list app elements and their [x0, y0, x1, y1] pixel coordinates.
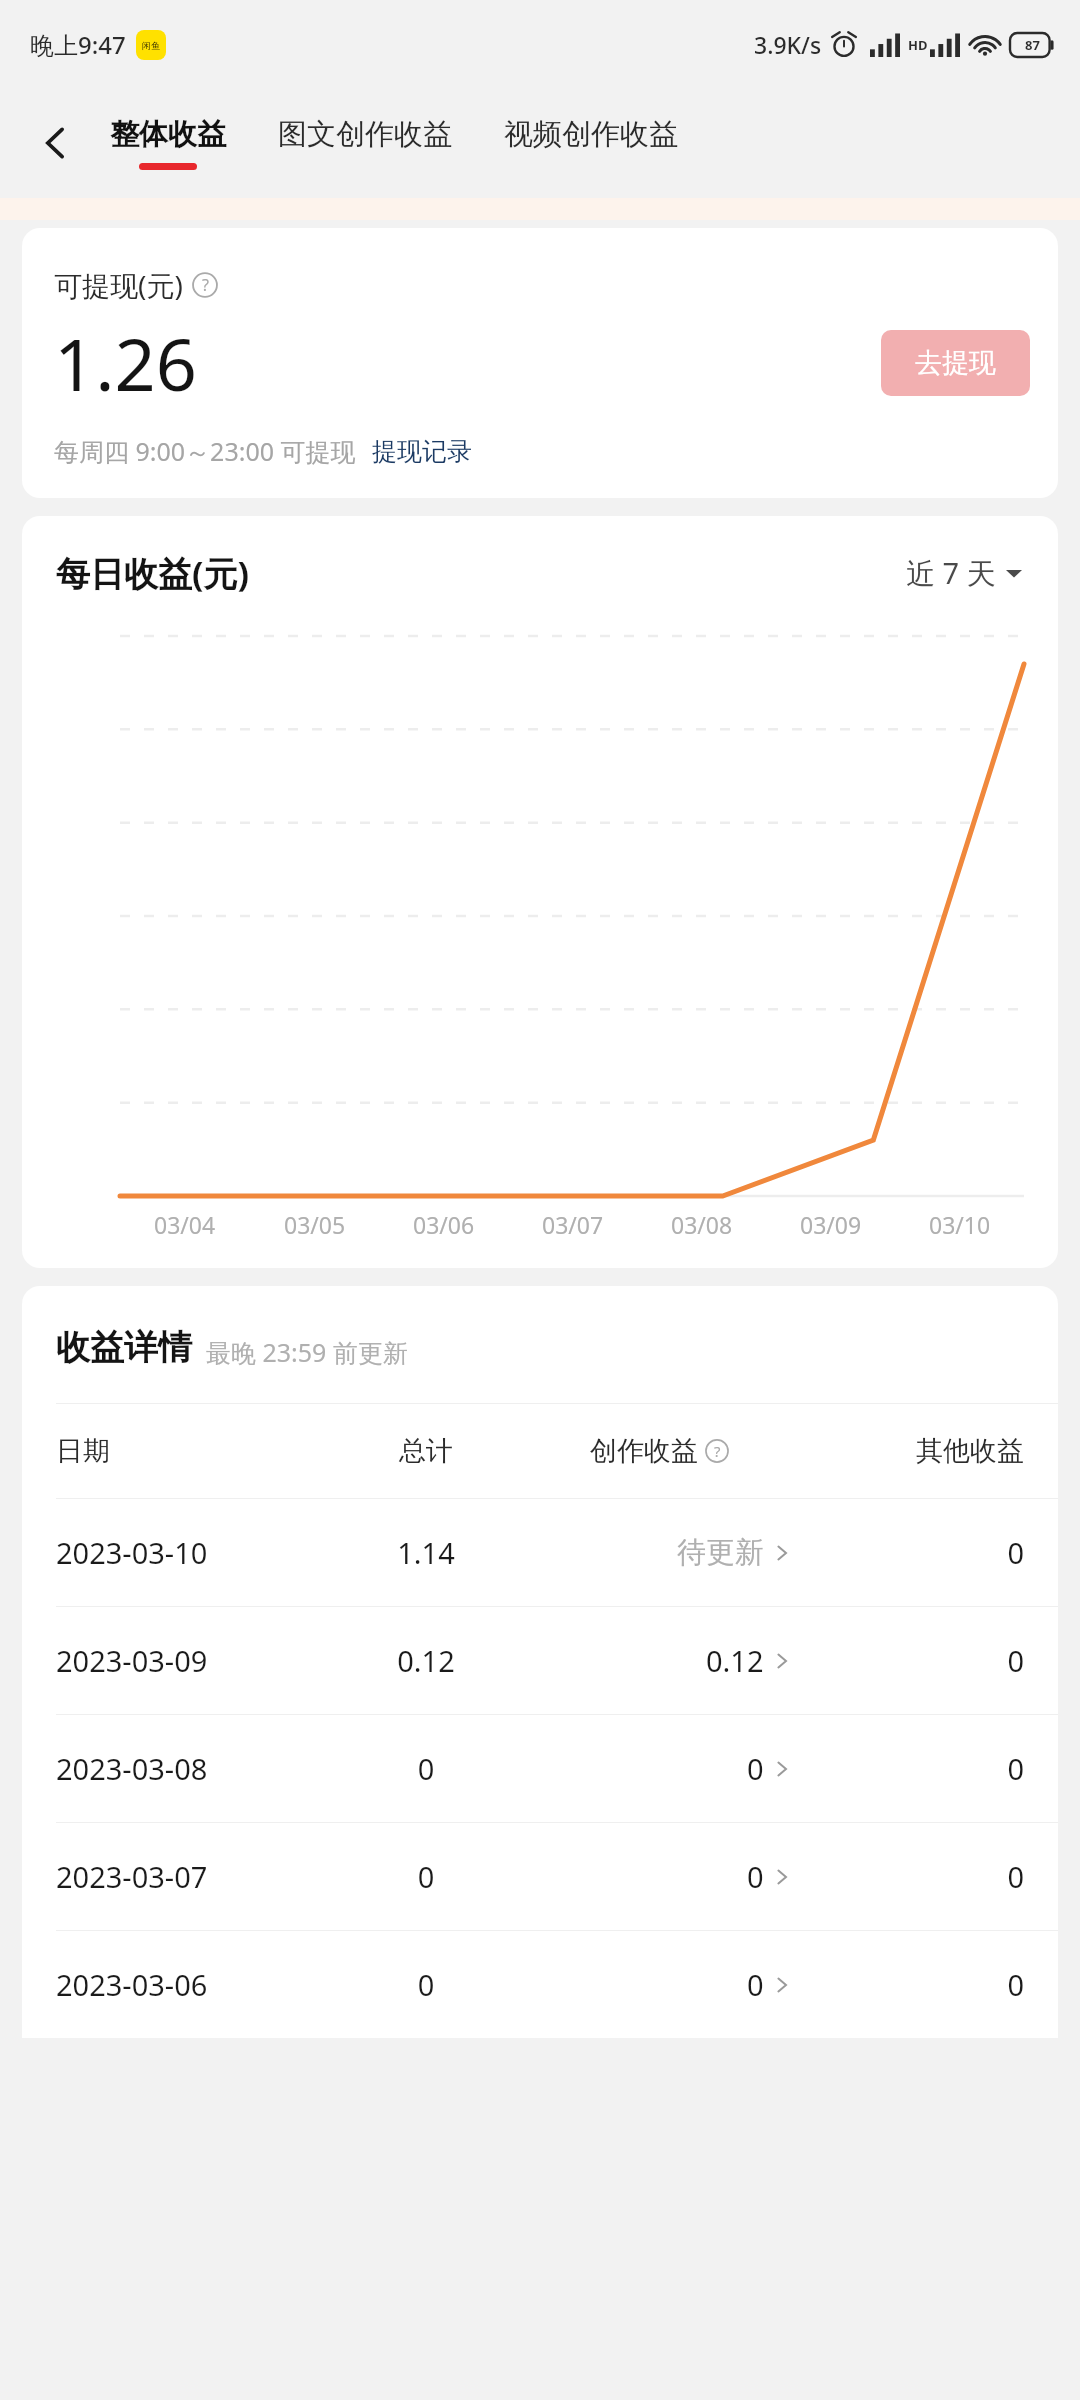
staticText: 日期	[56, 1434, 328, 1468]
button[interactable]: Help	[704, 1438, 730, 1464]
staticText: 03/09	[800, 1209, 862, 1240]
staticText: 03/04	[154, 1209, 216, 1240]
staticText: 每周四 9:00～23:00 可提现	[54, 434, 356, 468]
staticText: 视频创作收益	[504, 116, 678, 153]
staticText: 去提现	[915, 346, 996, 380]
staticText: 87	[1025, 36, 1040, 54]
staticText: 3.9K/s	[754, 29, 822, 60]
staticText: 创作收益	[590, 1434, 698, 1468]
staticText: 0	[328, 1857, 524, 1896]
staticText: 收益详情	[56, 1326, 192, 1369]
staticText: 2023-03-07	[56, 1857, 328, 1896]
button[interactable]: 2023-03-08	[22, 1715, 1058, 1822]
button[interactable]: Back	[20, 107, 92, 179]
staticText: 其他收益	[796, 1434, 1024, 1468]
staticText: 整体收益	[110, 116, 226, 153]
staticText: 03/10	[929, 1209, 991, 1240]
staticText: 0	[796, 1857, 1024, 1896]
button[interactable]: 去提现	[881, 330, 1030, 396]
staticText: 03/07	[542, 1209, 604, 1240]
staticText: 0	[747, 1749, 764, 1788]
staticText: 提现记录	[372, 436, 472, 467]
staticText: 2023-03-10	[56, 1533, 328, 1572]
button[interactable]: Help	[191, 271, 219, 299]
staticText: 03/08	[671, 1209, 733, 1240]
staticText: 0	[747, 1857, 764, 1896]
staticText: HD	[908, 36, 928, 54]
button[interactable]: 图文创作收益	[278, 110, 452, 176]
staticText: 0	[796, 1533, 1024, 1572]
staticText: 0	[796, 1641, 1024, 1680]
staticText: 最晚 23:59 前更新	[206, 1335, 408, 1369]
staticText: 0	[328, 1965, 524, 2004]
staticText: 0.12	[328, 1641, 524, 1680]
button[interactable]: 提现记录	[372, 436, 472, 467]
staticText: 闲鱼	[142, 40, 160, 51]
staticText: 晚上9:47	[30, 28, 126, 61]
button[interactable]: 整体收益	[110, 110, 226, 176]
staticText: 03/06	[413, 1209, 475, 1240]
staticText: 1.14	[328, 1533, 524, 1572]
staticText: 2023-03-06	[56, 1965, 328, 2004]
staticText: ?	[714, 1441, 721, 1461]
button[interactable]: 2023-03-07	[22, 1823, 1058, 1930]
staticText: 可提现(元)	[54, 266, 183, 304]
staticText: 0	[796, 1749, 1024, 1788]
button[interactable]: 近 7 天	[906, 553, 1024, 593]
staticText: 待更新	[677, 1534, 764, 1571]
staticText: 1.26	[54, 314, 197, 412]
button[interactable]: 2023-03-09	[22, 1607, 1058, 1714]
staticText: 0	[796, 1965, 1024, 2004]
staticText: 图文创作收益	[278, 116, 452, 153]
staticText: ?	[202, 274, 209, 296]
staticText: 0	[328, 1749, 524, 1788]
staticText: 2023-03-09	[56, 1641, 328, 1680]
button[interactable]: 2023-03-06	[22, 1931, 1058, 2038]
staticText: 0.12	[706, 1641, 764, 1680]
staticText: 近 7 天	[906, 553, 996, 593]
staticText: 03/05	[284, 1209, 346, 1240]
staticText: 0	[747, 1965, 764, 2004]
button[interactable]: 视频创作收益	[504, 110, 678, 176]
staticText: 总计	[328, 1434, 524, 1468]
staticText: 2023-03-08	[56, 1749, 328, 1788]
staticText: 每日收益(元)	[56, 550, 250, 596]
button[interactable]: 2023-03-10	[22, 1499, 1058, 1606]
